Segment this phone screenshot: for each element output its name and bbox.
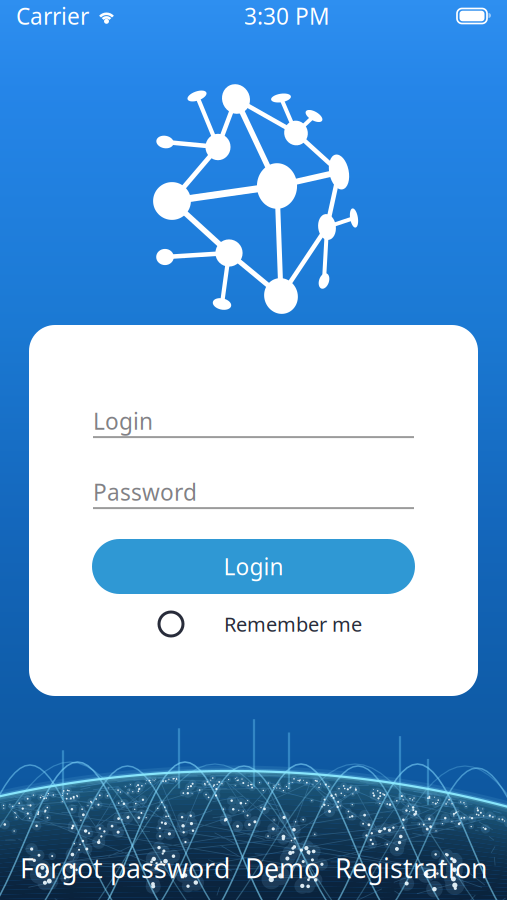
button[interactable]: Remember me: [159, 605, 354, 643]
staticText: Remember me: [224, 611, 362, 637]
button[interactable]: Demo: [245, 841, 320, 895]
button[interactable]: Login: [92, 539, 415, 594]
staticText: Password: [93, 477, 197, 507]
staticText: Registration: [335, 850, 487, 886]
button[interactable]: Forgot password: [20, 841, 230, 895]
staticText: Demo: [245, 850, 320, 886]
button[interactable]: Registration: [335, 841, 487, 895]
staticText: Forgot password: [20, 850, 230, 886]
staticText: Carrier: [16, 1, 89, 31]
staticText: Login: [93, 406, 153, 436]
staticText: Login: [223, 551, 283, 581]
staticText: 3:30 PM: [244, 1, 330, 31]
